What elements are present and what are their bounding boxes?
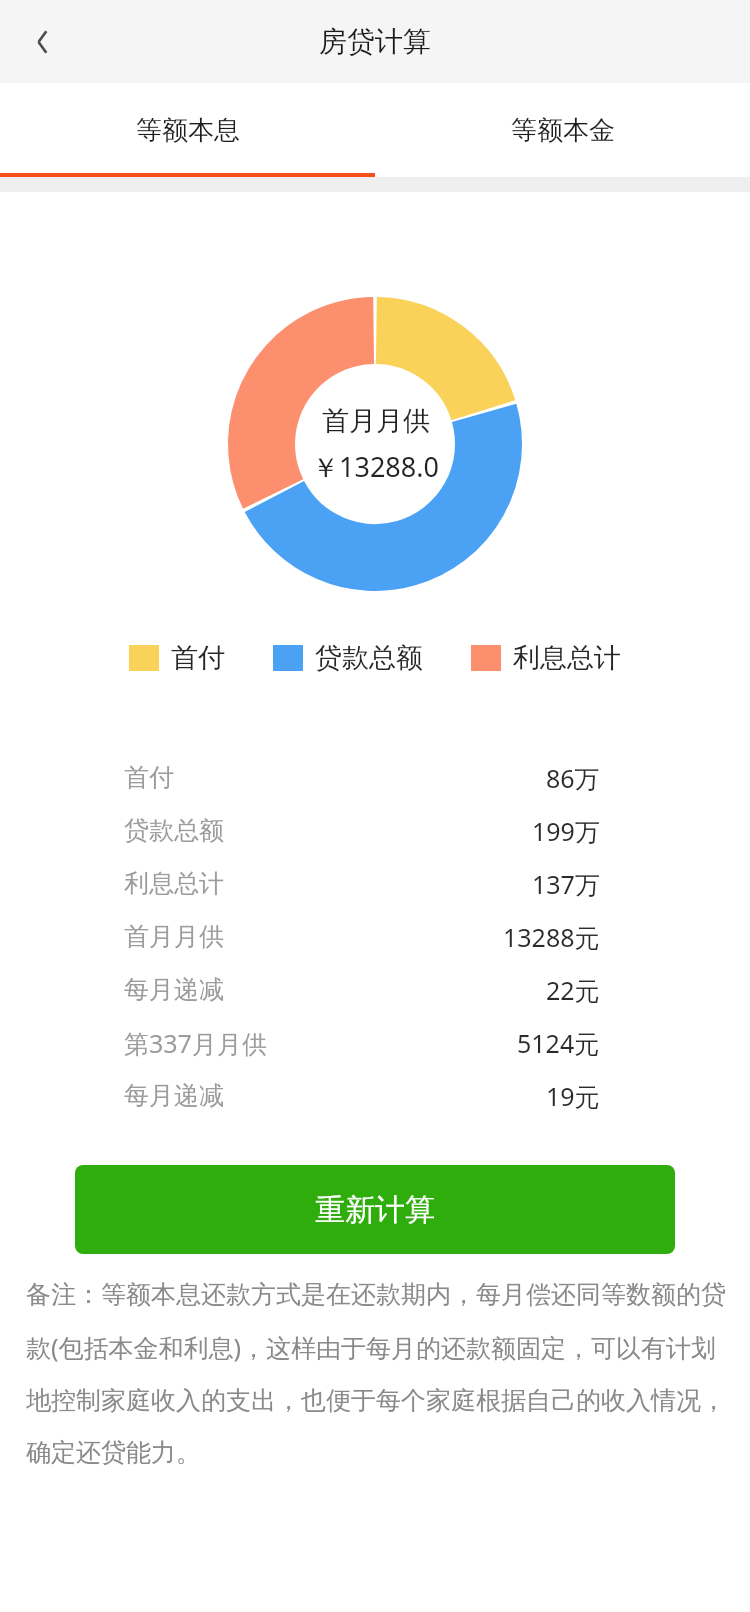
staticText: 利息总计 (513, 641, 621, 675)
staticText: 首月月供 (124, 921, 224, 952)
staticText: 贷款总额 (124, 815, 224, 846)
staticText: 137万 (532, 867, 600, 901)
staticText: 22元 (546, 973, 600, 1007)
button[interactable]: 贷款总额 (273, 641, 423, 675)
staticText: 每月递减 (124, 974, 224, 1005)
button[interactable]: 重新计算 (75, 1165, 675, 1254)
staticText: 86万 (546, 761, 600, 795)
staticText: 等额本金 (511, 114, 615, 147)
staticText: 利息总计 (124, 868, 224, 899)
staticText: 首月月供 (322, 404, 430, 438)
staticText: 备注：等额本息还款方式是在还款期内，每月偿还同等数额的贷款(包括本金和利息)，这… (26, 1279, 728, 1468)
button[interactable]: 利息总计 (471, 641, 621, 675)
staticText: ￥13288.0 (312, 448, 439, 485)
button[interactable]: 等额本金 (375, 83, 750, 177)
staticText: 等额本息 (136, 114, 240, 147)
staticText: 每月递减 (124, 1080, 224, 1111)
staticText: 199万 (532, 814, 600, 848)
button[interactable]: 等额本息 (0, 83, 375, 177)
staticText: 第337月月供 (124, 1026, 267, 1060)
button[interactable]: 首付 (129, 641, 225, 675)
staticText: 房贷计算 (319, 24, 431, 59)
staticText: 13288元 (503, 920, 600, 954)
staticText: 重新计算 (315, 1191, 435, 1229)
staticText: 贷款总额 (315, 641, 423, 675)
staticText: 19元 (546, 1079, 600, 1113)
staticText: 首付 (124, 762, 174, 793)
staticText: 首付 (171, 641, 225, 675)
staticText: 5124元 (517, 1026, 600, 1060)
button[interactable]: Back (0, 0, 83, 83)
